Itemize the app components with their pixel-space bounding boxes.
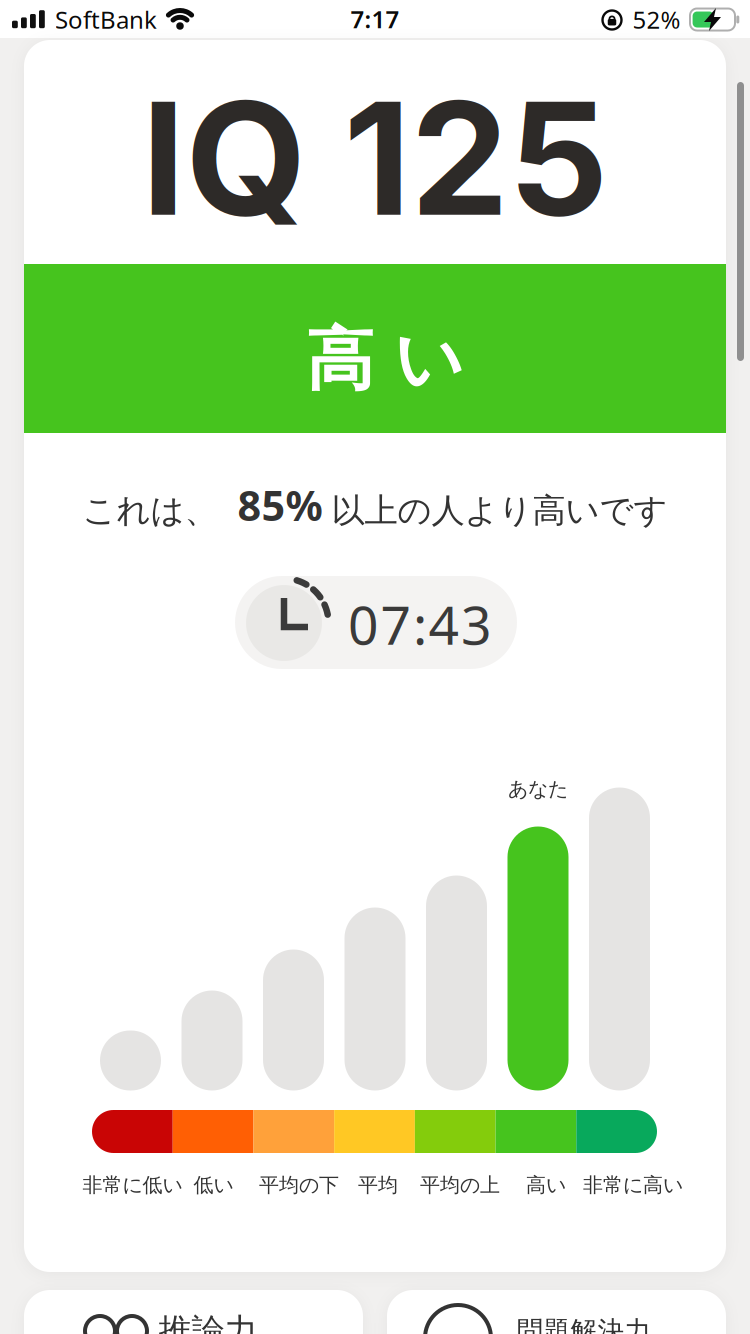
staticText: 非常に高い bbox=[583, 1173, 683, 1197]
staticText: IQ 125 bbox=[141, 64, 608, 252]
staticText: 07:43 bbox=[348, 589, 492, 659]
staticText: 低い bbox=[194, 1173, 234, 1197]
staticText: これは、 85% 以上の人より高いです bbox=[82, 478, 667, 532]
staticText: 高い bbox=[306, 318, 464, 402]
button[interactable]: 推論力 bbox=[24, 1290, 363, 1334]
staticText: あなた bbox=[508, 777, 568, 801]
staticText: 平均の上 bbox=[420, 1173, 500, 1197]
staticText: 平均 bbox=[358, 1173, 398, 1197]
staticText: 高い bbox=[526, 1173, 566, 1197]
button[interactable]: 問題解決力 bbox=[387, 1290, 726, 1334]
staticText: 非常に低い bbox=[82, 1173, 182, 1197]
staticText: 推論力 bbox=[158, 1310, 257, 1334]
staticText: 平均の下 bbox=[259, 1173, 339, 1197]
staticText: 問題解決力 bbox=[516, 1315, 651, 1334]
staticText: SoftBank bbox=[55, 4, 157, 35]
staticText: 52% bbox=[632, 4, 680, 35]
staticText: 7:17 bbox=[350, 3, 399, 35]
